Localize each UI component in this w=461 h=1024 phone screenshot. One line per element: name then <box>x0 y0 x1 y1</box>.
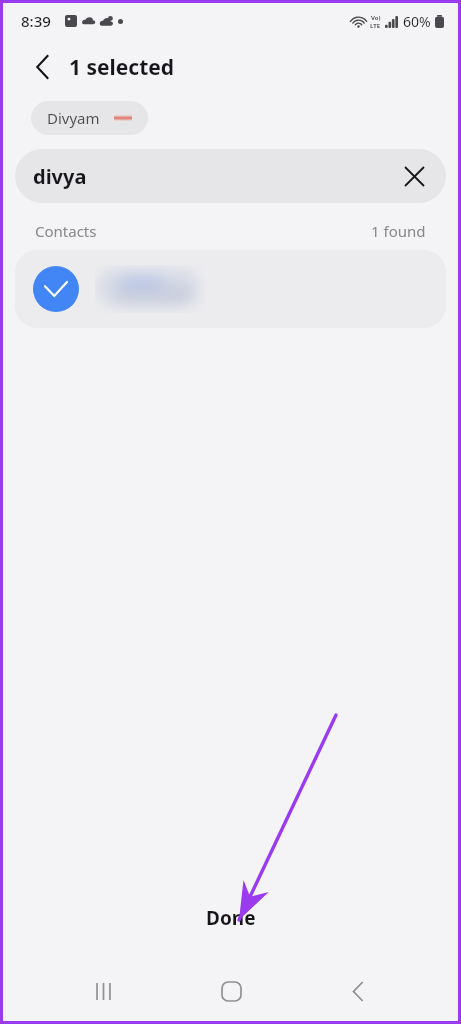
button[interactable]: Clear search <box>396 158 432 194</box>
button[interactable]: Done <box>196 901 266 935</box>
button[interactable] <box>15 250 446 328</box>
staticText: Vo) <box>371 14 381 22</box>
button[interactable]: divya <box>15 149 446 203</box>
staticText: 8:39 <box>21 11 51 31</box>
button[interactable]: Divyam <box>31 101 148 135</box>
button[interactable]: Home <box>203 963 259 1019</box>
staticText: LTE <box>370 22 381 30</box>
button[interactable]: Back <box>330 963 386 1019</box>
staticText: Contacts <box>35 221 97 241</box>
staticText: Done <box>206 905 256 931</box>
staticText: Divyam <box>47 108 100 128</box>
staticText: 1 selected <box>69 53 175 82</box>
staticText: 1 found <box>371 221 426 241</box>
button[interactable]: Recents <box>75 963 131 1019</box>
button[interactable]: Back <box>23 47 63 87</box>
staticText: divya <box>33 163 87 190</box>
staticText: 60% <box>403 12 431 31</box>
